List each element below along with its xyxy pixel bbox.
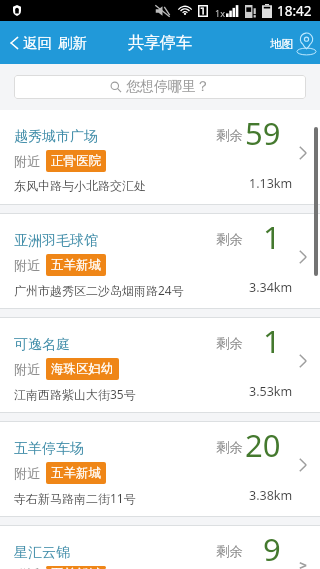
button[interactable]: 五羊停车场 xyxy=(0,422,320,516)
staticText: 1.13km xyxy=(249,175,293,192)
other: 查看详情 xyxy=(299,250,307,264)
staticText: 3.34km xyxy=(249,279,293,296)
staticText: 可逸名庭 xyxy=(14,336,70,354)
staticText: 五羊停车场 xyxy=(14,440,84,458)
staticText: 附近 xyxy=(14,153,40,169)
other: 查看详情 xyxy=(299,562,307,569)
button[interactable]: 返回 xyxy=(7,28,55,58)
staticText: 3.38km xyxy=(249,487,293,504)
staticText: 海珠区妇幼 xyxy=(51,361,114,377)
staticText: 五羊新城 xyxy=(51,566,101,569)
staticText: 返回 xyxy=(23,34,52,52)
staticText: 剩余 xyxy=(216,543,243,560)
staticText: 3.53km xyxy=(249,383,293,400)
staticText: 剩余 xyxy=(216,127,243,144)
staticText: 寺右新马路南二街11号 xyxy=(14,490,136,506)
staticText: 共享停车 xyxy=(128,33,192,53)
other: 查看详情 xyxy=(299,458,307,472)
staticText: 59 xyxy=(245,112,281,154)
staticText: 亚洲羽毛球馆 xyxy=(14,232,98,250)
button[interactable]: 地图 Map xyxy=(264,29,320,57)
other: 查看详情 xyxy=(299,146,307,160)
staticText: 您想停哪里？ xyxy=(126,78,210,96)
staticText: 20 xyxy=(245,424,281,466)
staticText: 附近 xyxy=(14,566,40,569)
staticText: 1 xyxy=(263,216,281,258)
staticText: 剩余 xyxy=(216,231,243,248)
staticText: 东风中路与小北路交汇处 xyxy=(14,178,146,193)
staticText: 正骨医院 xyxy=(51,153,101,169)
other: 查看详情 xyxy=(299,354,307,368)
staticText: 五羊新城 xyxy=(51,465,101,481)
staticText: 附近 xyxy=(14,361,40,377)
button[interactable]: 亚洲羽毛球馆 xyxy=(0,214,320,308)
staticText: 地图 xyxy=(270,37,293,51)
staticText: 1 xyxy=(263,320,281,362)
button[interactable]: 刷新 xyxy=(55,28,92,58)
staticText: 剩余 xyxy=(216,335,243,352)
staticText: 刷新 xyxy=(58,34,87,52)
staticText: 五羊新城 xyxy=(51,257,101,273)
button[interactable]: 星汇云锦 xyxy=(0,526,320,569)
staticText: 1x xyxy=(215,7,225,19)
button[interactable]: 您想停哪里？ xyxy=(14,75,306,99)
staticText: 广州市越秀区二沙岛烟雨路24号 xyxy=(14,282,184,298)
staticText: 星汇云锦 xyxy=(14,544,70,562)
button[interactable]: 越秀城市广场 xyxy=(0,110,320,204)
staticText: 越秀城市广场 xyxy=(14,128,98,146)
staticText: 附近 xyxy=(14,465,40,481)
staticText: 剩余 xyxy=(216,439,243,456)
staticText: 18:42 xyxy=(277,2,312,20)
staticText: 江南西路紫山大街35号 xyxy=(14,386,136,402)
button[interactable]: 可逸名庭 xyxy=(0,318,320,412)
staticText: 附近 xyxy=(14,257,40,273)
staticText: 9 xyxy=(263,528,281,569)
